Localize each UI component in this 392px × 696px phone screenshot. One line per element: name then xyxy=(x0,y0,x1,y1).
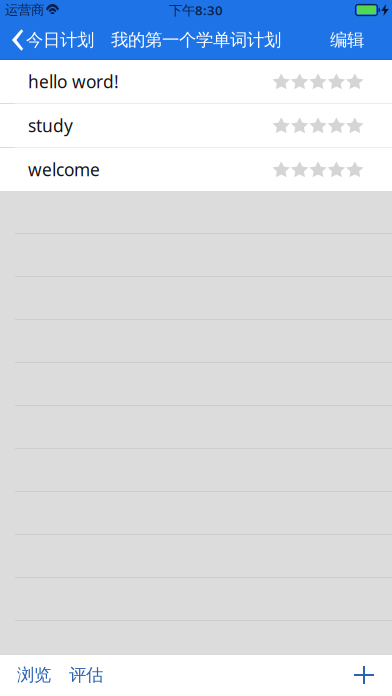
staticText: welcome xyxy=(28,158,100,181)
staticText: 评估 xyxy=(69,664,103,686)
staticText: hello word! xyxy=(28,70,119,93)
staticText: 我的第一个学单词计划 xyxy=(111,29,281,51)
button[interactable]: 今日计划 xyxy=(0,23,94,57)
button[interactable]: welcome xyxy=(0,148,392,191)
button[interactable]: hello word! xyxy=(0,60,392,103)
staticText: 运营商 xyxy=(5,2,44,18)
staticText: 下午8:30 xyxy=(169,1,223,19)
staticText: 今日计划 xyxy=(26,29,94,51)
button[interactable]: 编辑 xyxy=(330,23,392,57)
button[interactable]: study xyxy=(0,104,392,147)
staticText: 浏览 xyxy=(17,664,51,686)
staticText: study xyxy=(28,114,73,137)
button[interactable]: 浏览 xyxy=(11,656,57,694)
staticText: 编辑 xyxy=(330,29,364,51)
button[interactable]: 评估 xyxy=(63,656,109,694)
button[interactable]: Add word xyxy=(346,658,382,692)
